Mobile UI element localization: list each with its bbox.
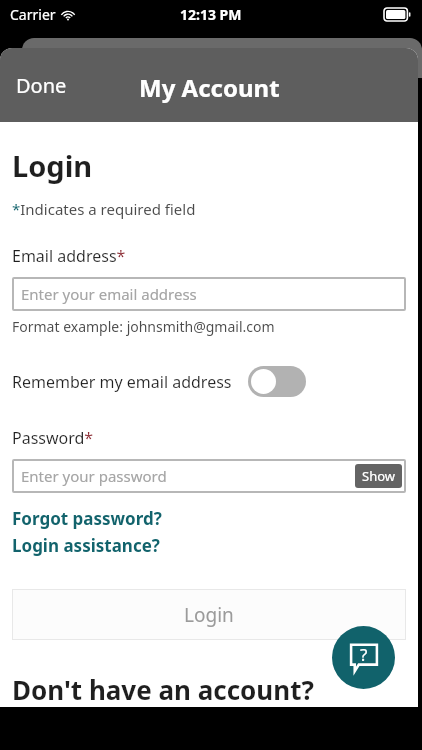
button[interactable]: Remember my email address xyxy=(0,362,418,401)
staticText: My Account xyxy=(139,71,280,104)
button[interactable]: Help chat xyxy=(332,626,395,689)
staticText: *Indicates a required field xyxy=(12,199,196,219)
staticText: 12:13 PM xyxy=(180,5,242,24)
button[interactable]: Enter your email address xyxy=(12,277,406,311)
staticText: ? xyxy=(360,643,368,666)
button[interactable]: Remember my email address toggle xyxy=(248,366,306,397)
staticText: Login xyxy=(184,602,234,628)
button[interactable]: Forgot password? xyxy=(12,507,162,530)
staticText: Carrier xyxy=(10,5,56,24)
staticText: Enter your email address xyxy=(21,284,197,304)
button[interactable]: Show xyxy=(355,464,402,488)
staticText: Login assistance? xyxy=(12,534,160,557)
staticText: Done xyxy=(16,72,67,99)
staticText: Format example: johnsmith@gmail.com xyxy=(12,317,275,336)
button[interactable]: Login assistance? xyxy=(12,534,160,557)
button[interactable]: Login xyxy=(12,589,406,640)
staticText: Email address* xyxy=(12,245,126,267)
staticText: Remember my email address xyxy=(12,371,232,393)
staticText: Login xyxy=(12,146,93,185)
staticText: Show xyxy=(362,467,395,485)
button[interactable]: Done xyxy=(4,64,79,107)
staticText: Password* xyxy=(12,427,94,449)
staticText: Forgot password? xyxy=(12,507,162,530)
staticText: Enter your password xyxy=(21,466,167,486)
staticText: Don't have an account? xyxy=(12,672,314,707)
